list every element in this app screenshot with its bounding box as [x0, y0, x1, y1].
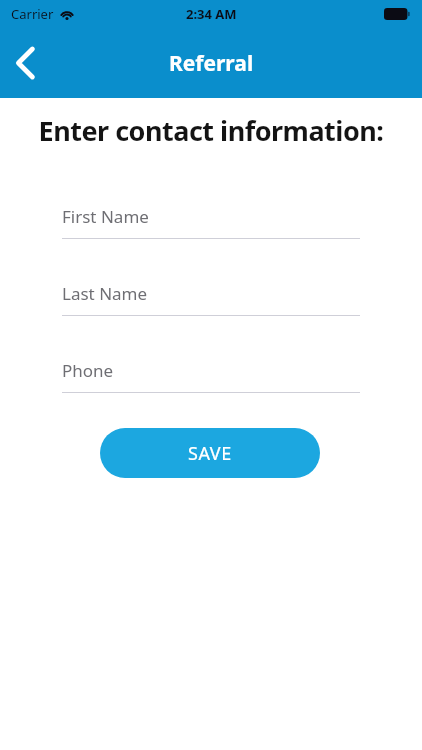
- button[interactable]: First Name: [62, 205, 360, 239]
- staticText: Referral: [169, 49, 254, 78]
- staticText: Carrier: [11, 5, 54, 23]
- staticText: Enter contact information:: [0, 112, 422, 149]
- button[interactable]: Phone: [62, 359, 360, 393]
- staticText: Phone: [62, 359, 114, 382]
- button[interactable]: Last Name: [62, 282, 360, 316]
- staticText: Last Name: [62, 282, 148, 305]
- staticText: 2:34 AM: [186, 5, 237, 23]
- staticText: SAVE: [188, 441, 232, 466]
- button[interactable]: SAVE: [100, 428, 320, 478]
- button[interactable]: Back: [0, 37, 52, 89]
- staticText: First Name: [62, 205, 149, 228]
